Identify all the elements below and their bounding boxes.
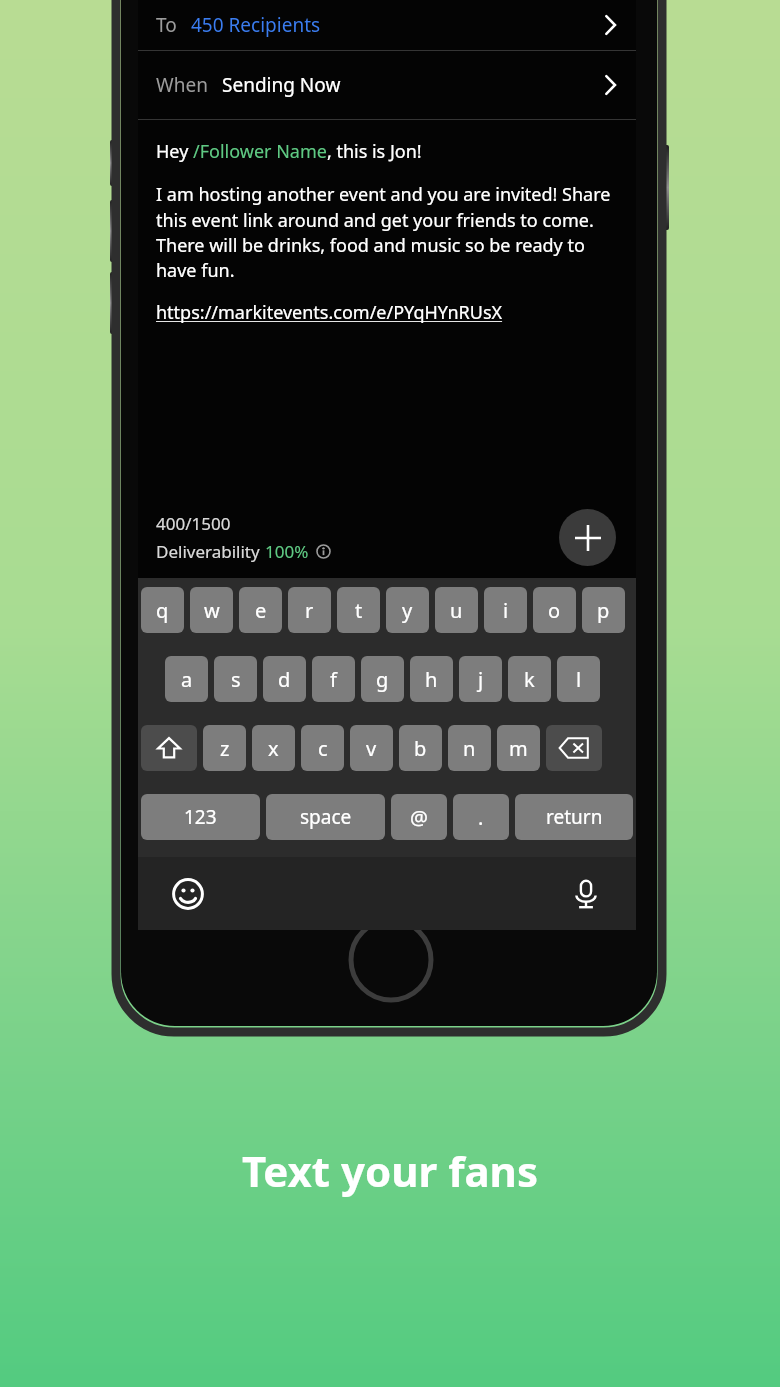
button[interactable]: space	[266, 794, 385, 840]
button[interactable]: https://markitevents.com/e/PYqHYnRUsX	[156, 300, 503, 325]
button[interactable]: u	[435, 587, 478, 633]
staticText: l	[576, 666, 582, 693]
staticText: k	[524, 666, 535, 693]
button[interactable]: 123	[141, 794, 260, 840]
staticText: Text your fans	[242, 1142, 538, 1199]
button[interactable]: return	[515, 794, 633, 840]
button[interactable]: p	[582, 587, 625, 633]
staticText: e	[255, 597, 267, 624]
button[interactable]: h	[410, 656, 453, 702]
staticText: Hey /Follower Name, this is Jon!	[156, 139, 422, 164]
button[interactable]: Add	[559, 509, 616, 566]
staticText: i	[503, 597, 509, 624]
button[interactable]: @	[391, 794, 447, 840]
staticText: 400/1500	[156, 512, 231, 535]
button[interactable]: q	[141, 587, 184, 633]
button[interactable]: When	[138, 51, 636, 119]
button[interactable]: Backspace	[546, 725, 602, 771]
staticText: t	[355, 597, 363, 624]
staticText: o	[548, 597, 561, 624]
staticText: s	[231, 666, 241, 693]
button[interactable]: k	[508, 656, 551, 702]
staticText: n	[463, 735, 476, 762]
staticText: @	[410, 804, 428, 831]
button[interactable]: c	[301, 725, 344, 771]
staticText: v	[366, 735, 377, 762]
button[interactable]: w	[190, 587, 233, 633]
staticText: a	[181, 666, 193, 693]
button[interactable]: s	[214, 656, 257, 702]
button[interactable]: r	[288, 587, 331, 633]
staticText: .	[478, 804, 484, 831]
button[interactable]: .	[453, 794, 509, 840]
staticText: 450 Recipients	[191, 12, 321, 38]
staticText: d	[278, 666, 291, 693]
button[interactable]: f	[312, 656, 355, 702]
staticText: g	[376, 666, 389, 693]
button[interactable]: v	[350, 725, 393, 771]
staticText: h	[425, 666, 438, 693]
button[interactable]: n	[448, 725, 491, 771]
staticText: Deliverability	[156, 540, 265, 563]
button[interactable]: Emoji	[168, 874, 208, 914]
staticText: b	[414, 735, 427, 762]
staticText: When	[156, 72, 208, 98]
button[interactable]: m	[497, 725, 540, 771]
staticText: Sending Now	[222, 72, 341, 98]
button[interactable]: d	[263, 656, 306, 702]
staticText: q	[156, 597, 169, 624]
button[interactable]: l	[557, 656, 600, 702]
button[interactable]: e	[239, 587, 282, 633]
staticText: w	[204, 597, 220, 624]
staticText: 123	[184, 804, 217, 830]
staticText: u	[450, 597, 463, 624]
button[interactable]: a	[165, 656, 208, 702]
button[interactable]: b	[399, 725, 442, 771]
staticText: f	[330, 666, 337, 693]
staticText: y	[402, 597, 413, 624]
button[interactable]: z	[203, 725, 246, 771]
button[interactable]: j	[459, 656, 502, 702]
button[interactable]: y	[386, 587, 429, 633]
staticText: r	[305, 597, 314, 624]
staticText: z	[220, 735, 230, 762]
staticText: j	[478, 666, 484, 693]
button[interactable]: To	[138, 0, 636, 50]
staticText: I am hosting another event and you are i…	[156, 182, 624, 282]
button[interactable]: x	[252, 725, 295, 771]
staticText: space	[300, 804, 352, 830]
staticText: p	[597, 597, 610, 624]
button[interactable]: o	[533, 587, 576, 633]
staticText: c	[318, 735, 328, 762]
button[interactable]: Dictation	[566, 874, 606, 914]
button[interactable]: Shift	[141, 725, 197, 771]
button[interactable]: t	[337, 587, 380, 633]
button[interactable]: g	[361, 656, 404, 702]
button[interactable]: i	[484, 587, 527, 633]
staticText: 100%	[265, 540, 309, 563]
staticText: m	[509, 735, 528, 762]
staticText: To	[156, 12, 177, 38]
staticText: return	[546, 804, 603, 830]
staticText: x	[268, 735, 279, 762]
other: Info	[316, 544, 331, 559]
